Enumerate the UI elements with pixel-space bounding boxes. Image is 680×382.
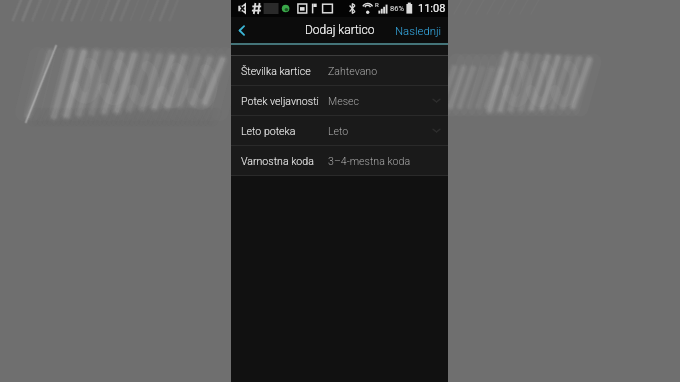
staticText: Številka kartice: [241, 65, 311, 77]
staticText: Zahtevano: [328, 65, 378, 77]
staticText: Mesec: [328, 95, 359, 107]
button[interactable]: Naslednji: [387, 17, 448, 43]
staticText: 86%: [390, 4, 404, 13]
button[interactable]: Številka kartice: [231, 56, 448, 86]
button[interactable]: Varnostna koda: [231, 146, 448, 176]
button[interactable]: Leto poteka: [231, 116, 448, 146]
staticText: Leto poteka: [241, 125, 296, 137]
staticText: Leto: [328, 125, 349, 137]
button[interactable]: Potek veljavnosti: [231, 86, 448, 116]
staticText: Dodaj kartico: [305, 23, 375, 37]
staticText: Varnostna koda: [241, 155, 314, 167]
staticText: 3–4-mestna koda: [328, 155, 411, 167]
staticText: 11:08: [418, 2, 446, 15]
staticText: Potek veljavnosti: [241, 95, 319, 107]
button[interactable]: Back: [231, 17, 257, 43]
staticText: Naslednji: [395, 24, 442, 37]
staticText: R: [375, 1, 379, 8]
